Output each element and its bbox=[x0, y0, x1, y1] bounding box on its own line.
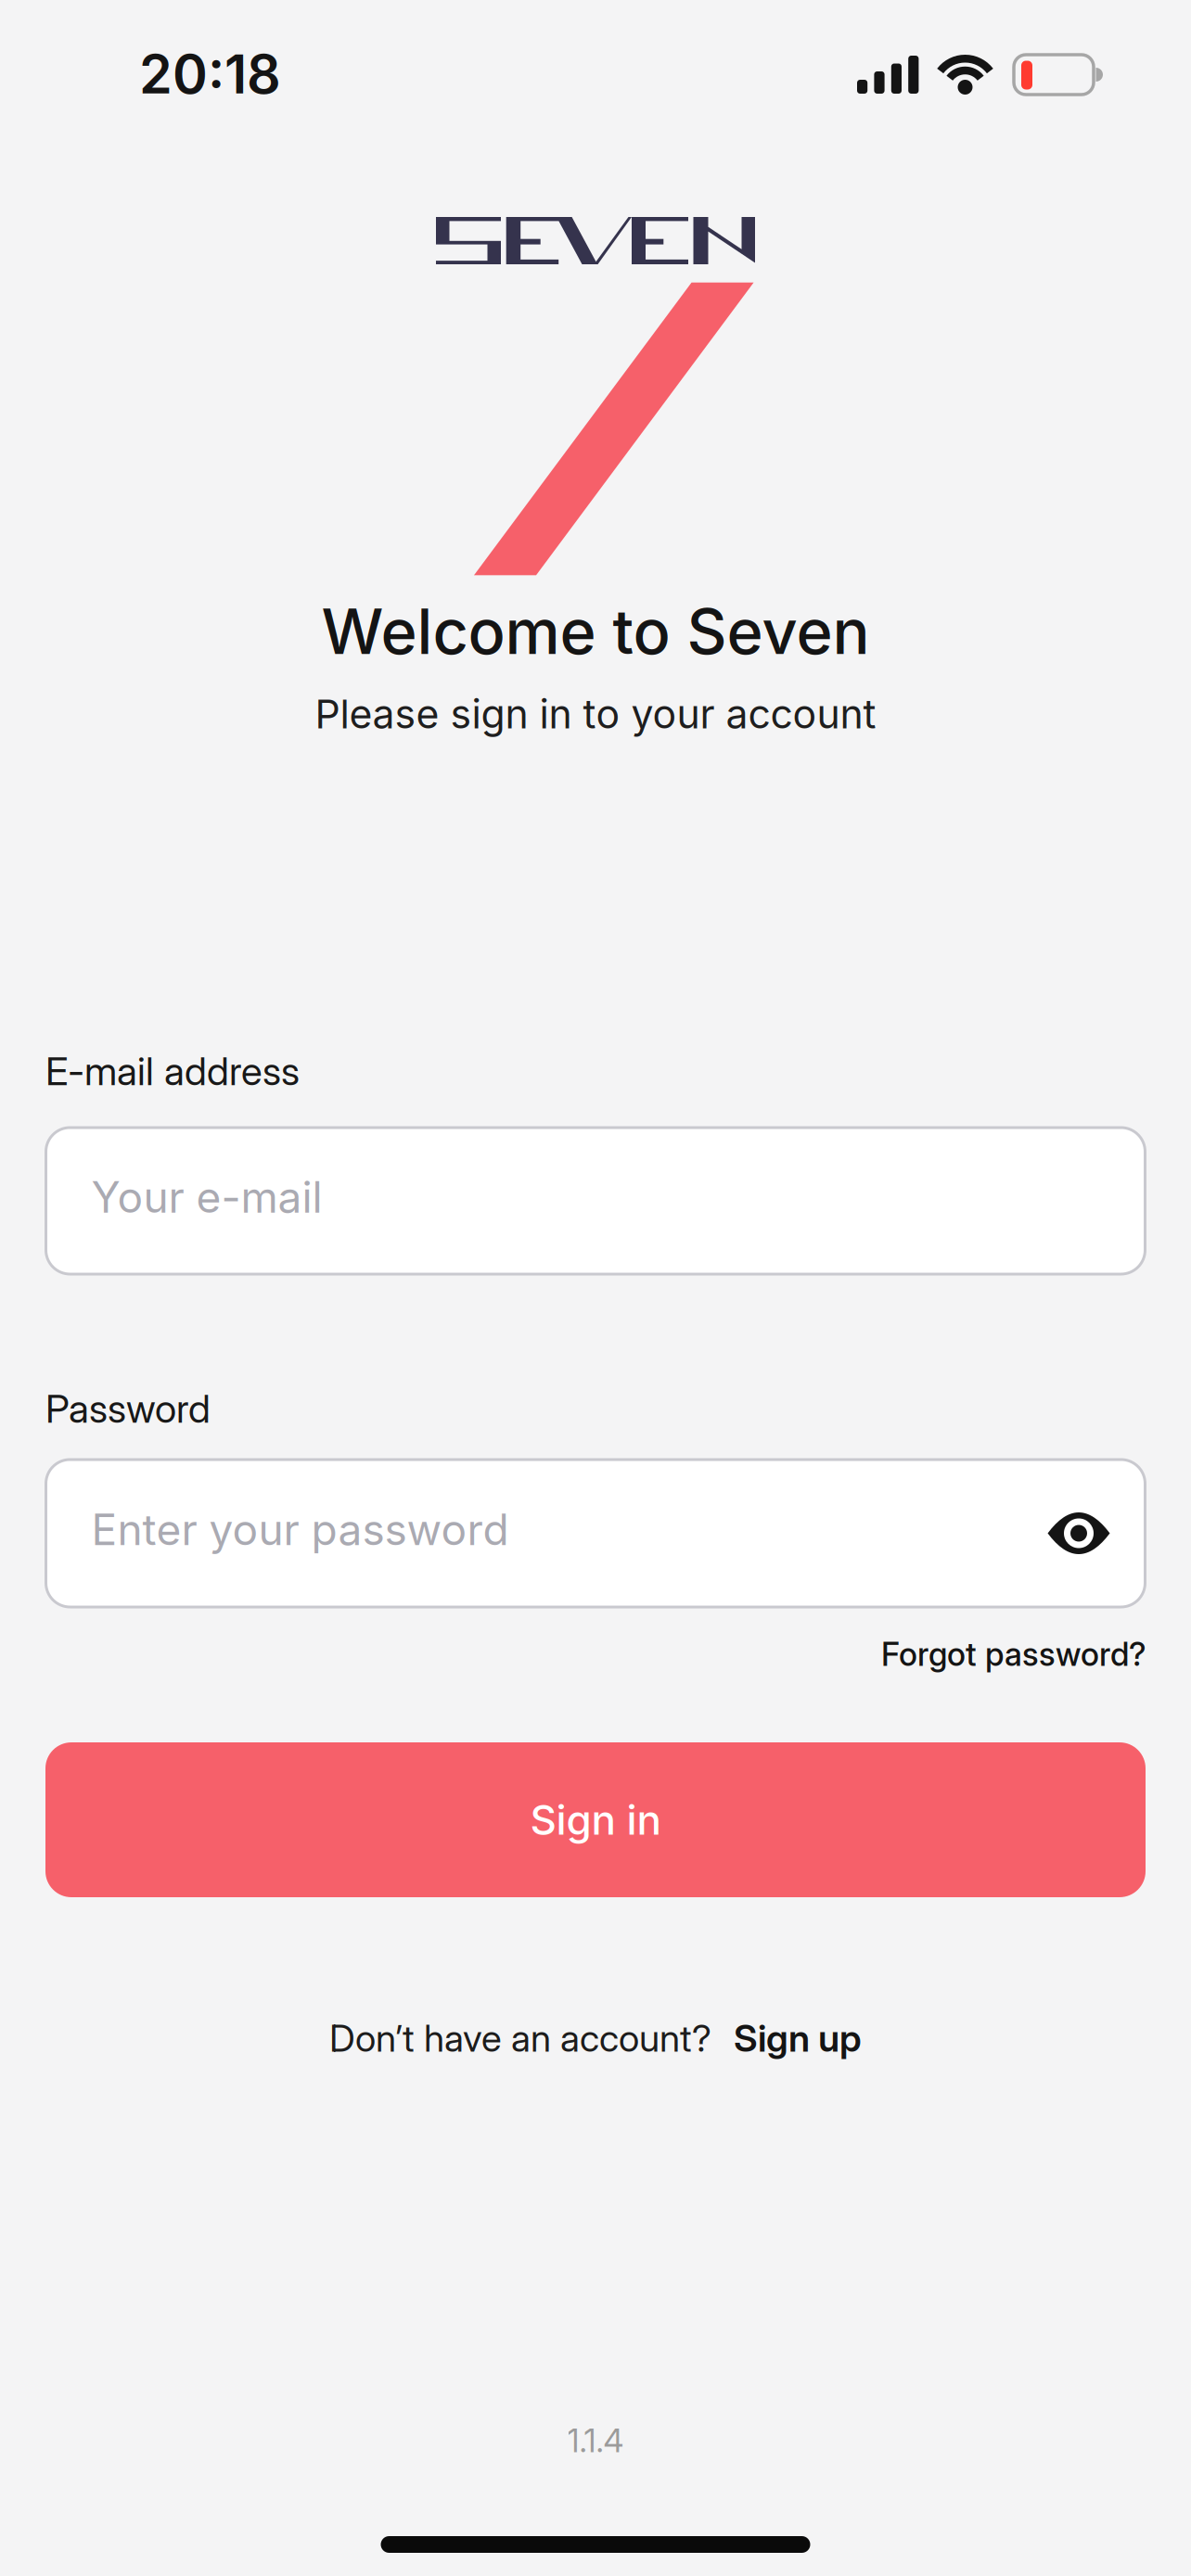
button[interactable]: Sign in bbox=[45, 1742, 1146, 1897]
staticText: Your e-mail bbox=[91, 1171, 322, 1223]
staticText: Forgot password? bbox=[881, 1635, 1146, 1674]
staticText: Welcome to Seven bbox=[321, 594, 870, 669]
button[interactable]: Sign up bbox=[734, 2016, 862, 2061]
button[interactable]: Enter your password bbox=[46, 1460, 1145, 1607]
button[interactable] bbox=[1048, 1512, 1145, 1555]
staticText: Sign in bbox=[530, 1795, 661, 1844]
button[interactable]: Your e-mail bbox=[46, 1128, 1145, 1274]
staticText: Password bbox=[45, 1385, 211, 1432]
staticText: 20:18 bbox=[139, 42, 281, 106]
staticText: Enter your password bbox=[91, 1504, 509, 1555]
staticText: E-mail address bbox=[45, 1047, 300, 1095]
staticText: Don’t have an account? bbox=[329, 2016, 711, 2061]
staticText: Please sign in to your account bbox=[315, 690, 876, 738]
staticText: Sign up bbox=[734, 2016, 862, 2061]
staticText: 1.1.4 bbox=[567, 2421, 624, 2460]
button[interactable]: Forgot password? bbox=[881, 1635, 1146, 1674]
